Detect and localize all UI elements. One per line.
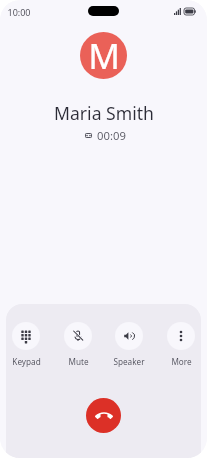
button[interactable]: More: [167, 322, 195, 367]
staticText: 10:00: [7, 6, 31, 18]
button[interactable]: Keypad: [12, 322, 40, 367]
button[interactable]: Speaker: [115, 322, 143, 367]
staticText: More: [171, 356, 192, 367]
staticText: Keypad: [12, 356, 41, 367]
staticText: M: [88, 32, 120, 79]
staticText: Maria Smith: [54, 101, 154, 125]
button[interactable]: End call: [86, 398, 121, 433]
staticText: Mute: [68, 356, 89, 367]
button[interactable]: Mute: [64, 322, 92, 367]
staticText: Speaker: [113, 356, 145, 367]
staticText: 00:09: [97, 128, 126, 143]
